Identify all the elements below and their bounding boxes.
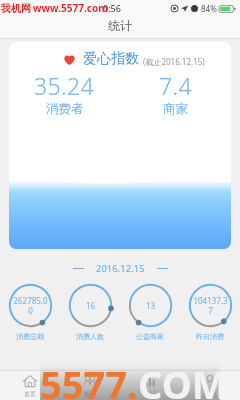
button[interactable]: 104137.37 [180, 283, 240, 341]
staticText: 35.24 [34, 70, 95, 101]
button[interactable]: 首页 [0, 371, 60, 400]
staticText: 昨日消费 [196, 332, 224, 341]
staticText: 消费者 [46, 101, 84, 117]
staticText: 消费总额 [16, 332, 44, 341]
staticText: 16 [72, 300, 109, 311]
staticText: 2016.12.15 [96, 262, 145, 275]
staticText: 统计 [108, 18, 132, 33]
staticText: 我机网 [1, 2, 31, 15]
staticText: 84% [201, 3, 217, 14]
button[interactable]: 统计 [120, 371, 180, 400]
staticText: www.5577.com [33, 1, 108, 15]
staticText: 圈子 [84, 390, 96, 398]
staticText: 爱心指数 [83, 50, 139, 68]
staticText: 我的 [204, 390, 216, 398]
staticText: 首页 [24, 390, 36, 398]
button[interactable]: 圈子 [60, 371, 120, 400]
staticText: 公益商家 [136, 332, 164, 341]
staticText: 0:56 [103, 2, 121, 14]
button[interactable]: 16 [60, 283, 120, 341]
staticText: (截止2016.12.15) [143, 56, 205, 67]
button[interactable]: 262785.00 [0, 283, 60, 341]
staticText: 104137.37 [192, 295, 229, 316]
button[interactable]: 我的 [180, 371, 240, 400]
staticText: 7.4 [159, 70, 193, 101]
staticText: 消费人数 [76, 332, 104, 341]
staticText: 商家 [163, 101, 188, 117]
button[interactable]: 13 [120, 283, 180, 341]
staticText: COM [138, 358, 220, 399]
staticText: 统计 [144, 390, 156, 398]
staticText: 262785.00 [12, 295, 49, 316]
staticText: 13 [132, 300, 169, 311]
staticText: 5577. [40, 358, 138, 399]
